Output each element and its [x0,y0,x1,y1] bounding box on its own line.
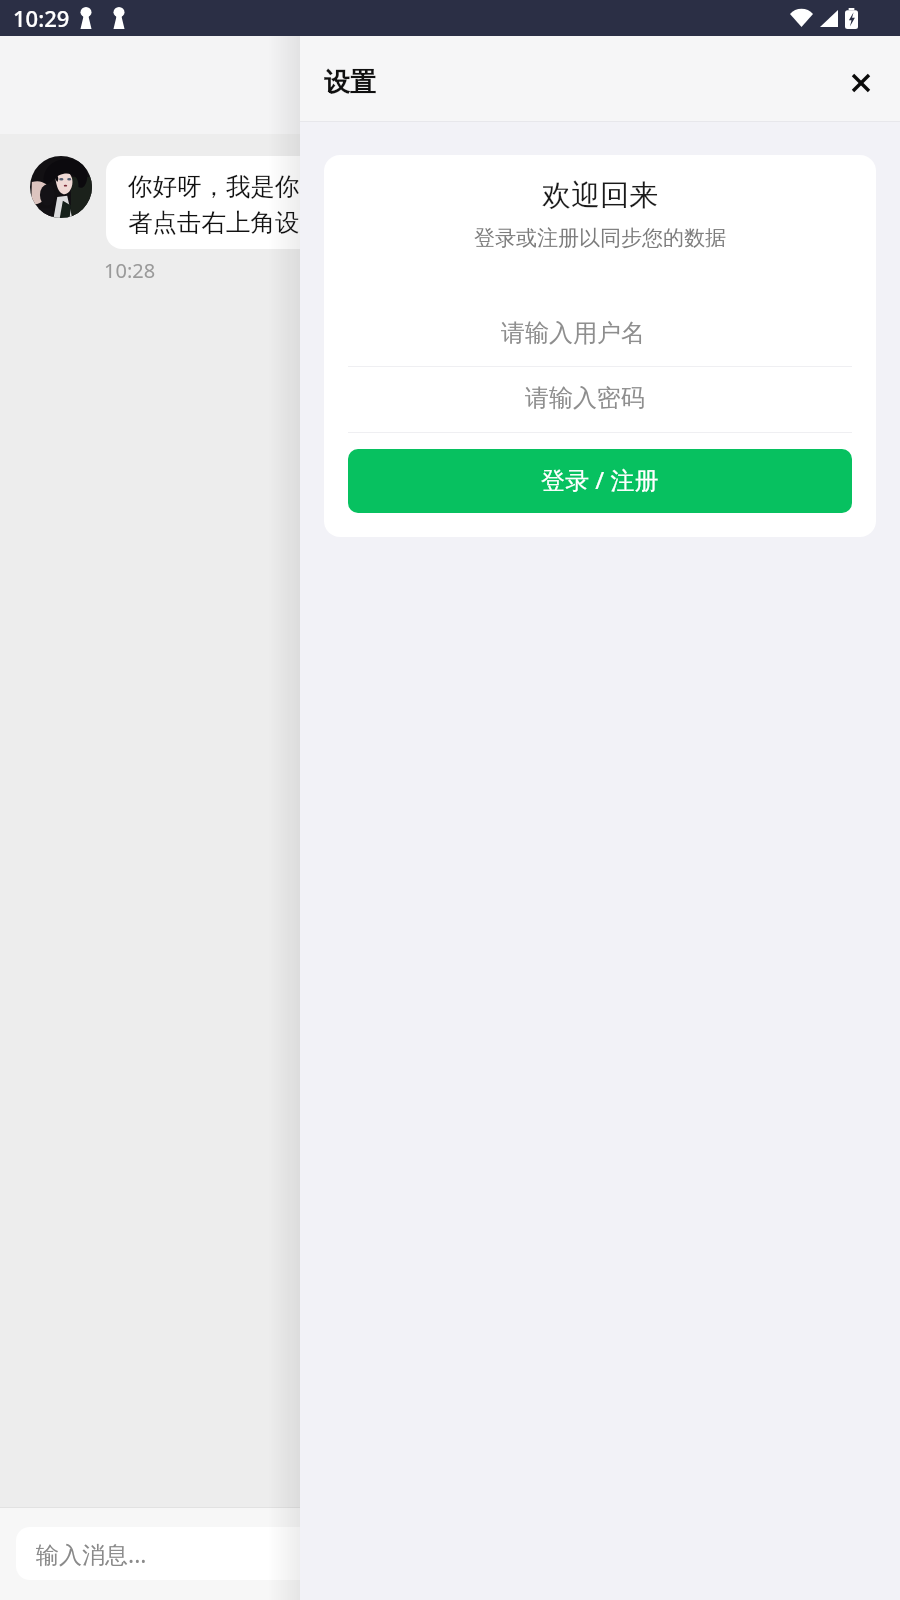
button[interactable]: 输入消息... [16,1527,884,1580]
staticText: 你好呀，我是你的AI助手～ 者点击右上角设置 [128,169,422,238]
button[interactable]: 请输入用户名 [348,299,852,366]
button[interactable]: Close settings [839,61,883,105]
button[interactable]: 登录 / 注册 [348,449,852,513]
staticText: 设置 [324,66,376,99]
staticText: 10:29 [13,3,70,33]
staticText: 请输入用户名 [501,318,645,348]
staticText: 请输入密码 [525,383,645,413]
staticText: 登录或注册以同步您的数据 [348,225,852,251]
button[interactable]: 请输入密码 [348,367,852,432]
staticText: 10:28 [104,257,156,284]
staticText: 登录 / 注册 [541,463,659,496]
button[interactable]: Close settings panel [0,0,300,1600]
staticText: 输入消息... [36,1538,147,1569]
staticText: 欢迎回来 [348,177,852,214]
